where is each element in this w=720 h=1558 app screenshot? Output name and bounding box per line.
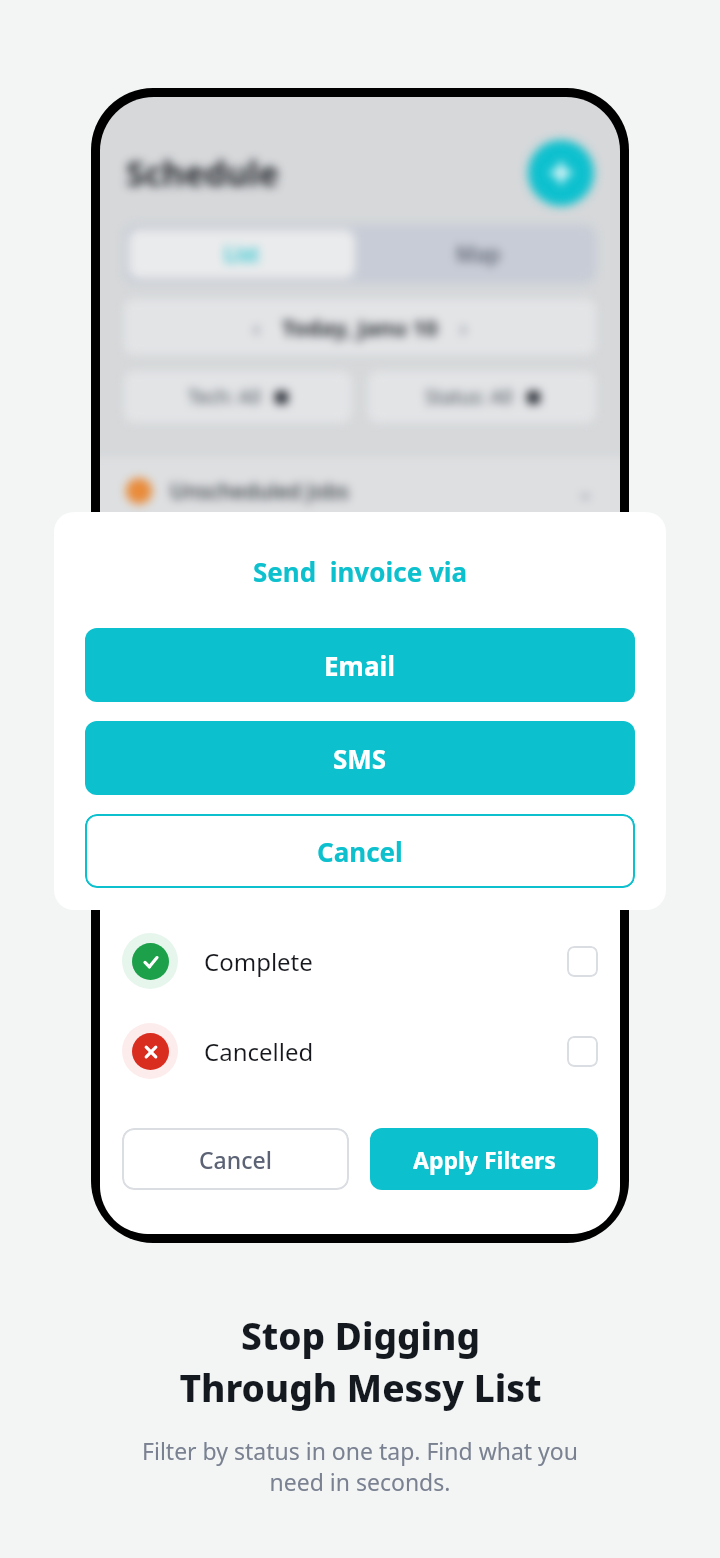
staticText: Apply Filters — [413, 1144, 556, 1175]
staticText: Status: All — [425, 384, 513, 410]
staticText: ⌄ — [577, 480, 594, 503]
staticText: Filter by status in one tap. Find what y… — [142, 1435, 578, 1498]
staticText: SMS — [333, 741, 387, 776]
button[interactable]: Email — [85, 628, 635, 702]
button[interactable]: ‹ — [124, 299, 596, 355]
staticText: Unscheduled Jobs — [170, 477, 349, 506]
button[interactable]: Cancel — [85, 814, 635, 888]
staticText: Tech: All — [188, 384, 261, 410]
staticText: List — [224, 240, 260, 269]
staticText: Cancel — [199, 1144, 272, 1175]
staticText: Schedule — [126, 150, 279, 196]
button[interactable]: Toggle Cancelled — [567, 1036, 598, 1067]
staticText: Complete — [204, 945, 313, 978]
staticText: Map — [456, 240, 501, 269]
button[interactable]: Complete — [122, 925, 598, 997]
button[interactable]: Status: All — [368, 371, 596, 423]
button[interactable]: Cancelled — [122, 1015, 598, 1087]
staticText: Email — [324, 648, 396, 683]
staticText: Send invoice via — [253, 554, 468, 589]
button[interactable]: SMS — [85, 721, 635, 795]
button[interactable]: List — [129, 230, 355, 278]
button[interactable]: Toggle Complete — [567, 946, 598, 977]
staticText: Cancel — [317, 834, 403, 869]
staticText: › — [460, 312, 467, 342]
button[interactable]: Apply Filters — [370, 1128, 598, 1190]
button[interactable]: Cancel — [122, 1128, 349, 1190]
button[interactable]: Map — [360, 225, 596, 283]
button[interactable]: Unscheduled Jobs — [126, 457, 594, 525]
staticText: Stop Digging Through Messy List — [179, 1310, 542, 1413]
staticText: Today, Janu 10 — [282, 312, 438, 342]
button[interactable]: Add job — [528, 140, 594, 206]
staticText: ‹ — [253, 312, 260, 342]
staticText: Cancelled — [204, 1035, 314, 1068]
button[interactable]: Tech: All — [124, 371, 352, 423]
